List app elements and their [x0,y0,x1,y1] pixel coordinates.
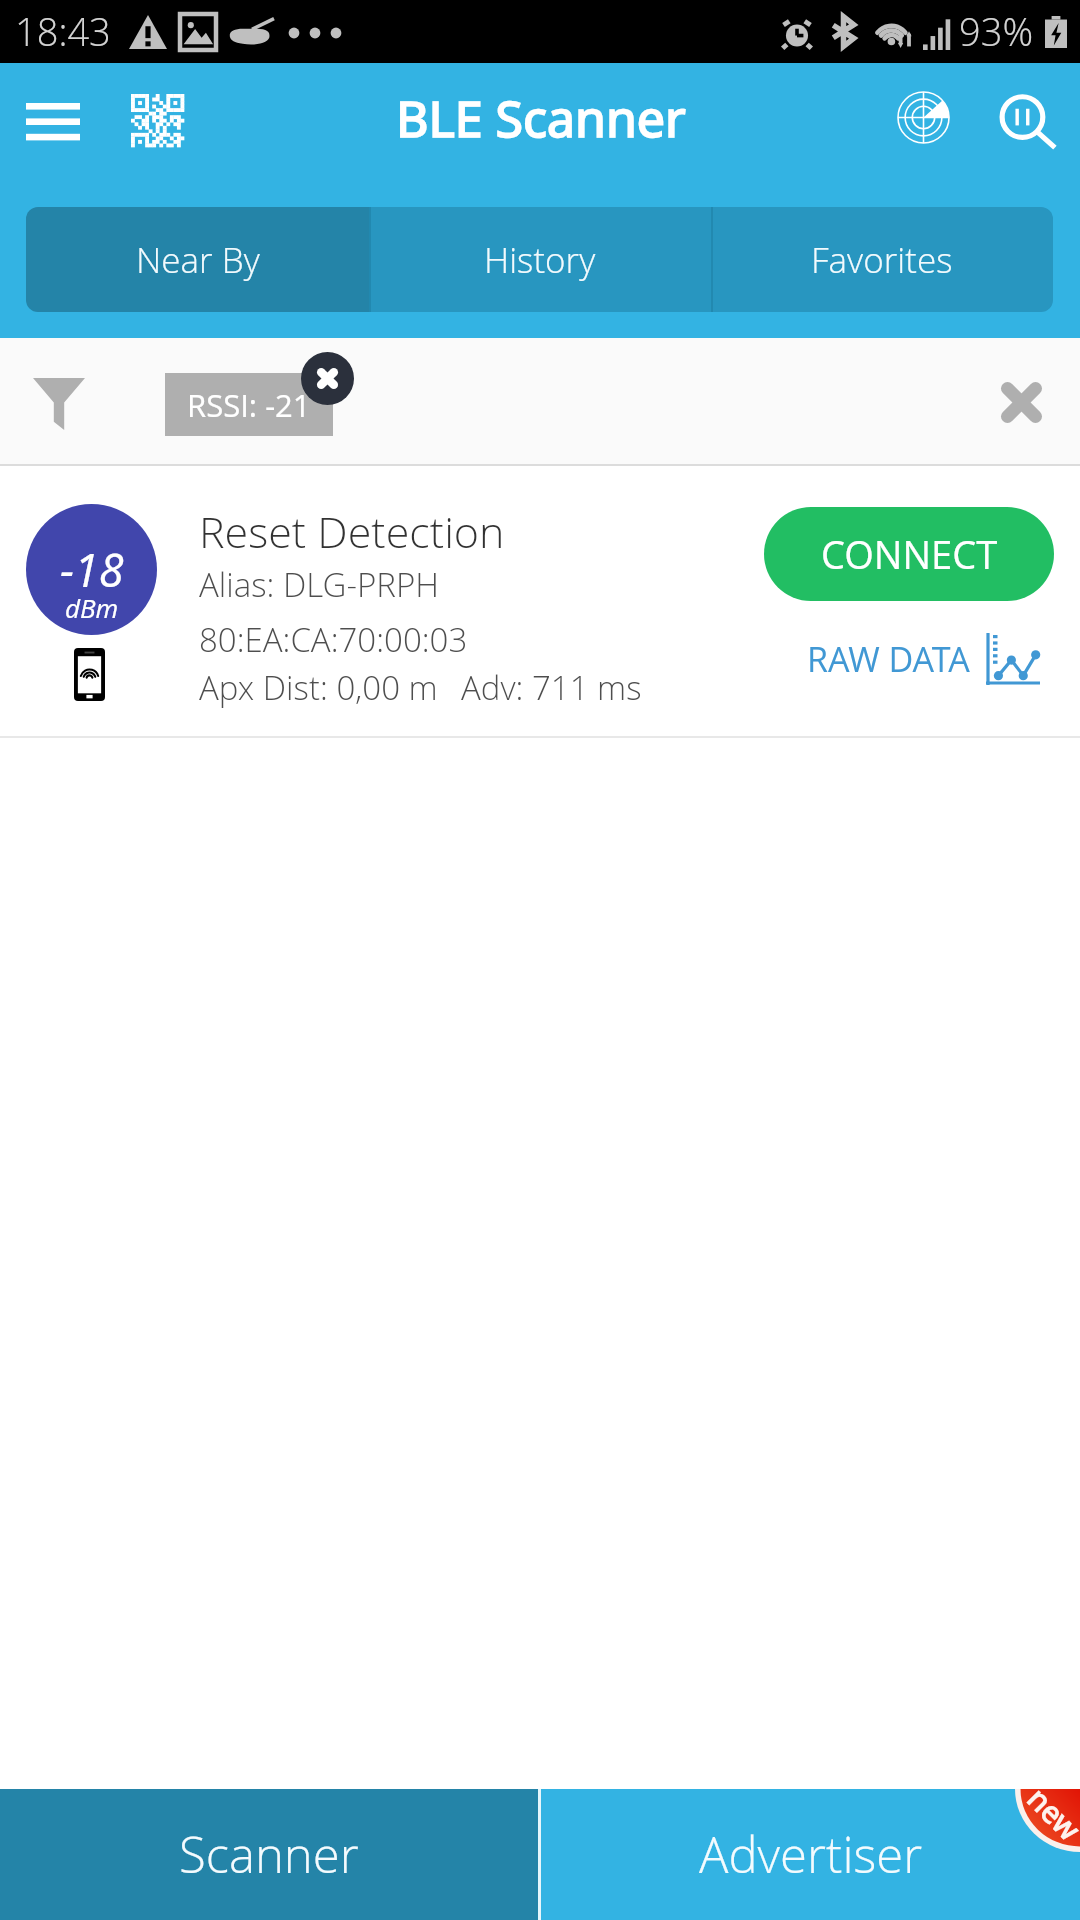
button[interactable]: Pause scan [975,81,1075,181]
staticText: CONNECT [821,528,998,580]
staticText: Alias: DLG-PRPH [199,562,440,607]
staticText: dBm [65,590,119,625]
button[interactable]: Remove filter [301,352,354,405]
button[interactable]: Scan QR code [108,63,208,163]
button[interactable]: Scanner [0,1789,538,1920]
staticText: BLE Scanner [396,84,686,152]
staticText: History [484,236,596,284]
staticText: Adv: 711 ms [461,665,642,710]
staticText: Reset Detection [199,502,505,561]
button[interactable]: Clear filters [981,362,1061,442]
staticText: -18 [60,539,124,600]
button[interactable]: Near By [26,207,369,312]
staticText: Near By [136,236,260,284]
button[interactable]: -18 [0,466,1080,738]
button[interactable]: RAW DATA [807,633,1040,685]
staticText: RAW DATA [807,636,970,682]
button[interactable]: Filter [8,352,108,452]
staticText: Apx Dist: 0,00 m [199,665,438,710]
staticText: Favorites [811,236,953,284]
button[interactable]: RSSI: -21 [165,373,333,436]
staticText: 80:EA:CA:70:00:03 [199,617,468,662]
staticText: new [1019,1778,1080,1849]
staticText: Scanner [179,1821,359,1888]
button[interactable]: Favorites [711,207,1053,312]
staticText: 93% [959,5,1034,57]
staticText: Advertiser [699,1821,923,1888]
button[interactable]: History [369,207,711,312]
staticText: RSSI: -21 [187,384,311,426]
button[interactable]: Menu [0,63,105,163]
button[interactable]: CONNECT [764,507,1054,601]
button[interactable]: Radar view [874,69,974,169]
staticText: 18:43 [15,5,111,57]
button[interactable]: Advertiser [541,1789,1080,1920]
